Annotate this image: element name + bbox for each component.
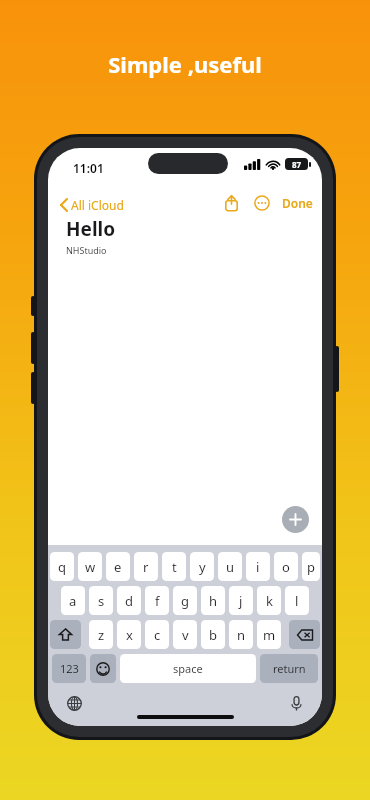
staticText: p (307, 558, 315, 576)
staticText: q (58, 558, 66, 576)
staticText: a (69, 592, 77, 610)
button[interactable]: k (257, 586, 281, 615)
button[interactable]: w (78, 552, 102, 581)
button[interactable]: Shift (50, 620, 81, 649)
staticText: f (155, 592, 160, 610)
button[interactable]: j (229, 586, 253, 615)
button[interactable]: Done (277, 191, 318, 215)
staticText: Simple ,useful (0, 49, 370, 79)
staticText: b (209, 626, 217, 644)
staticText: h (209, 592, 218, 610)
staticText: g (181, 592, 189, 610)
button[interactable]: c (145, 620, 169, 649)
staticText: NHStudio (66, 244, 107, 256)
button[interactable]: f (145, 586, 169, 615)
button[interactable]: x (117, 620, 141, 649)
button[interactable]: space (120, 654, 256, 683)
staticText: x (126, 626, 133, 644)
button[interactable]: p (302, 552, 320, 581)
button[interactable]: l (285, 586, 309, 615)
staticText: r (143, 558, 149, 576)
button[interactable]: e (106, 552, 130, 581)
staticText: space (173, 661, 203, 676)
button[interactable]: g (173, 586, 197, 615)
button[interactable]: y (190, 552, 214, 581)
button[interactable]: Change keyboard (62, 691, 86, 715)
staticText: j (239, 592, 243, 610)
button[interactable]: All iCloud (56, 194, 128, 216)
button[interactable]: Emoji (90, 654, 116, 683)
button[interactable]: Dictation (284, 691, 308, 715)
staticText: v (182, 626, 189, 644)
staticText: y (199, 558, 206, 576)
button[interactable]: u (218, 552, 242, 581)
button[interactable]: i (246, 552, 270, 581)
staticText: w (85, 558, 96, 576)
staticText: 87 (292, 159, 302, 170)
staticText: 123 (60, 661, 79, 676)
button[interactable]: a (61, 586, 85, 615)
staticText: e (114, 558, 122, 576)
button[interactable]: q (50, 552, 74, 581)
staticText: o (282, 558, 290, 576)
button[interactable]: z (89, 620, 113, 649)
staticText: Done (282, 195, 313, 211)
staticText: m (263, 626, 276, 644)
button[interactable]: b (201, 620, 225, 649)
staticText: s (98, 592, 105, 610)
staticText: 11:01 (73, 160, 104, 176)
button[interactable]: 123 (52, 654, 86, 683)
button[interactable]: t (162, 552, 186, 581)
staticText: z (98, 626, 105, 644)
button[interactable]: r (134, 552, 158, 581)
button[interactable]: More options (250, 191, 274, 215)
button[interactable]: return (260, 654, 318, 683)
button[interactable]: o (274, 552, 298, 581)
staticText: d (125, 592, 133, 610)
button[interactable]: Share (219, 191, 243, 215)
button[interactable]: h (201, 586, 225, 615)
staticText: t (172, 558, 177, 576)
staticText: c (154, 626, 161, 644)
button[interactable]: m (257, 620, 281, 649)
staticText: All iCloud (71, 197, 124, 213)
button[interactable]: s (89, 586, 113, 615)
staticText: i (256, 558, 260, 576)
button[interactable]: v (173, 620, 197, 649)
button[interactable]: Backspace (289, 620, 320, 649)
staticText: u (226, 558, 235, 576)
staticText: n (237, 626, 246, 644)
button[interactable]: Add (282, 506, 309, 533)
staticText: return (273, 661, 306, 676)
button[interactable]: d (117, 586, 141, 615)
staticText: k (266, 592, 273, 610)
staticText: l (295, 592, 299, 610)
staticText: Hello (66, 216, 116, 242)
button[interactable]: n (229, 620, 253, 649)
